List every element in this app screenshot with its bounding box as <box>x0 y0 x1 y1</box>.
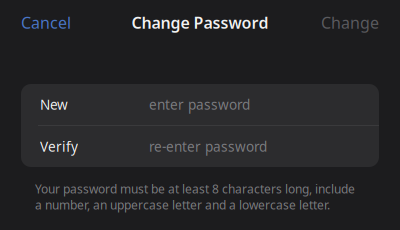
staticText: re-enter password <box>149 137 267 156</box>
staticText: New <box>40 95 68 114</box>
staticText: Change Password <box>131 12 268 33</box>
button[interactable]: New <box>21 84 379 125</box>
staticText: enter password <box>149 95 250 114</box>
staticText: Cancel <box>21 12 71 33</box>
staticText: Your password must be at least 8 charact… <box>35 181 355 213</box>
button[interactable]: Verify <box>21 126 379 167</box>
button[interactable]: Change <box>321 12 379 33</box>
button[interactable]: Cancel <box>21 12 71 33</box>
staticText: Verify <box>40 137 78 156</box>
staticText: Change <box>321 12 379 33</box>
